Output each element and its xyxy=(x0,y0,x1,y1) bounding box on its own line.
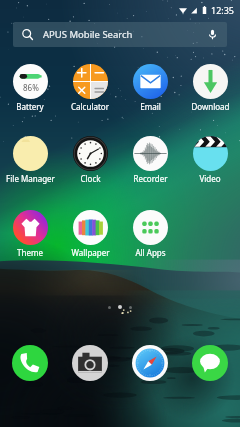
staticText: Theme xyxy=(17,247,43,258)
button[interactable]: Calculator xyxy=(60,64,120,112)
button[interactable]: Camera xyxy=(60,341,120,385)
button[interactable]: Wallpaper xyxy=(60,210,120,258)
staticText: All Apps xyxy=(135,247,166,258)
staticText: 12:35 xyxy=(211,4,235,16)
button[interactable]: File Manager xyxy=(0,136,60,184)
staticText: Clock xyxy=(80,173,101,184)
button[interactable]: Download xyxy=(180,64,240,112)
staticText: Wallpaper xyxy=(71,247,110,258)
staticText: Recorder xyxy=(133,173,168,184)
staticText: APUS Mobile Search xyxy=(43,28,133,41)
button[interactable]: Clock xyxy=(60,136,120,184)
button[interactable]: Phone xyxy=(0,341,60,385)
staticText: Download xyxy=(191,101,230,112)
button[interactable]: 86% xyxy=(0,64,60,112)
staticText: 86% xyxy=(23,82,39,93)
button[interactable]: APUS Mobile Search xyxy=(13,22,227,47)
staticText: Calculator xyxy=(71,101,109,112)
button[interactable]: Theme xyxy=(0,210,60,258)
button[interactable]: All Apps xyxy=(120,210,180,258)
button[interactable]: Video xyxy=(180,136,240,184)
staticText: Battery xyxy=(16,101,44,112)
staticText: Video xyxy=(199,173,221,184)
staticText: Email xyxy=(140,101,161,112)
button[interactable]: Recorder xyxy=(120,136,180,184)
staticText: File Manager xyxy=(6,173,55,184)
button[interactable]: Browser xyxy=(120,341,180,385)
button[interactable]: Messages xyxy=(180,341,240,385)
button[interactable]: Email xyxy=(120,64,180,112)
